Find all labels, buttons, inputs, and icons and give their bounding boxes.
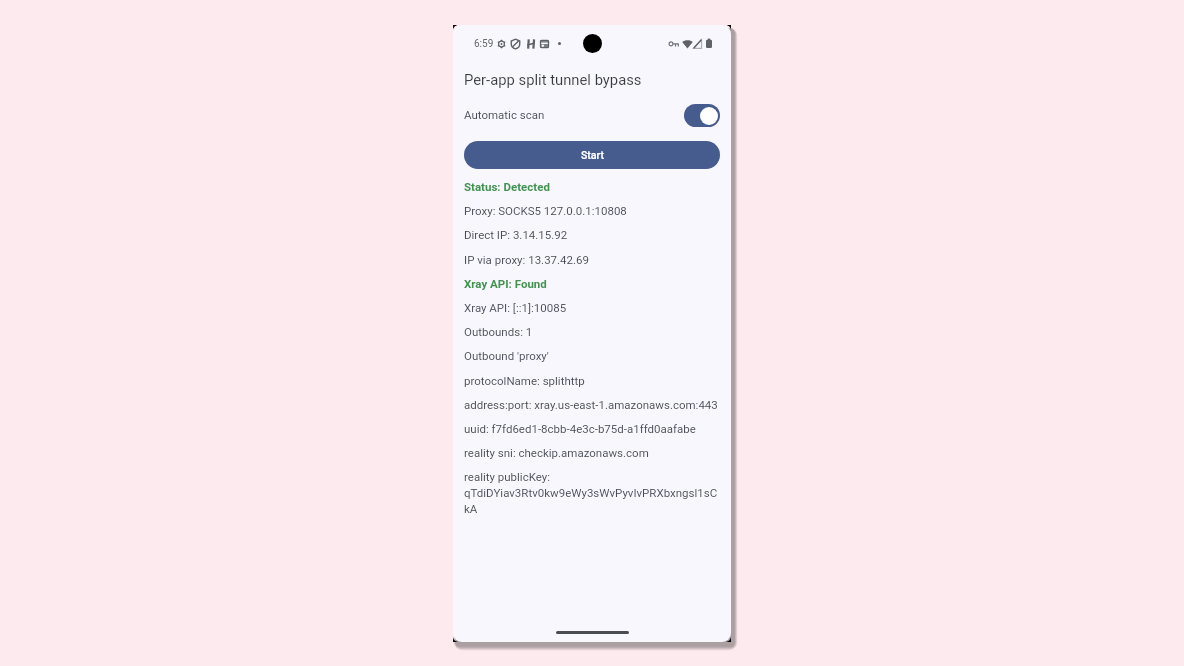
staticText: Xray API: Found bbox=[464, 277, 720, 290]
staticText: IP via proxy: 13.37.42.69 bbox=[464, 253, 720, 266]
staticText: reality sni: checkip.amazonaws.com bbox=[464, 446, 720, 459]
button[interactable]: Automatic scan bbox=[453, 93, 731, 131]
button[interactable]: Automatic scan bbox=[684, 104, 720, 127]
staticText: 6:59 bbox=[474, 38, 494, 50]
staticText: reality publicKey: qTdiDYiav3Rtv0kw9eWy3… bbox=[464, 470, 720, 515]
staticText: Status: Detected bbox=[464, 180, 720, 193]
button[interactable]: Start bbox=[464, 141, 720, 169]
staticText: Xray API: [::1]:10085 bbox=[464, 301, 720, 314]
staticText: Outbounds: 1 bbox=[464, 325, 720, 338]
staticText: protocolName: splithttp bbox=[464, 374, 720, 387]
staticText: uuid: f7fd6ed1-8cbb-4e3c-b75d-a1ffd0aafa… bbox=[464, 422, 720, 435]
staticText: address:port: xray.us-east-1.amazonaws.c… bbox=[464, 398, 720, 411]
staticText: Automatic scan bbox=[464, 108, 545, 121]
staticText: Per-app split tunnel bypass bbox=[464, 71, 642, 88]
staticText: Proxy: SOCKS5 127.0.0.1:10808 bbox=[464, 204, 720, 217]
staticText: Direct IP: 3.14.15.92 bbox=[464, 228, 720, 241]
staticText: Start bbox=[581, 149, 604, 161]
staticText: Outbound 'proxy' bbox=[464, 349, 720, 362]
